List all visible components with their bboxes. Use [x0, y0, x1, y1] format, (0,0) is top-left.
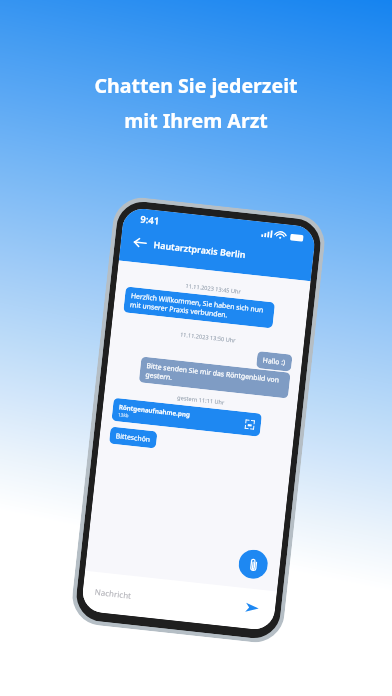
- staticText: Nachricht: [94, 586, 132, 601]
- staticText: Herzlich Willkommen, Sie haben sich nun …: [130, 291, 269, 324]
- button[interactable]: Herzlich Willkommen, Sie haben sich nun …: [123, 286, 275, 328]
- staticText: Röntgenaufnahme.png: [118, 402, 191, 419]
- staticText: Bitteschön: [115, 431, 151, 444]
- staticText: Hallo :): [262, 356, 286, 367]
- button[interactable]: Röntgenaufnahme.png: [111, 398, 262, 437]
- staticText: 11.11.2023 13:50 Uhr: [180, 330, 236, 344]
- button[interactable]: Back: [129, 232, 151, 254]
- staticText: Chatten Sie jederzeit: [94, 72, 298, 99]
- staticText: 9:41: [140, 213, 160, 228]
- staticText: 13kb: [118, 411, 129, 418]
- staticText: 11.11.2023 13:45 Uhr: [185, 282, 241, 296]
- button[interactable]: Bitte senden Sie mir das Röntgenbild von…: [139, 356, 291, 398]
- staticText: Hautarztpraxis Berlin: [153, 238, 247, 260]
- button[interactable]: Bitteschön: [109, 427, 157, 449]
- button[interactable]: Attach: [237, 548, 269, 580]
- staticText: mit Ihrem Arzt: [124, 107, 268, 134]
- button[interactable]: Send: [240, 596, 264, 620]
- staticText: gestern 11:11 Uhr: [177, 394, 225, 407]
- button[interactable]: Hallo :): [256, 351, 293, 372]
- staticText: Bitte senden Sie mir das Röntgenbild von…: [145, 361, 284, 394]
